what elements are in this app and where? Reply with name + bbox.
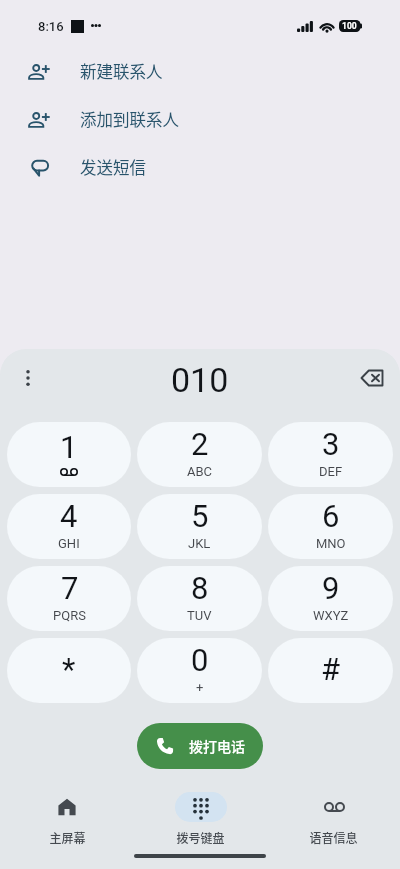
staticText: *: [62, 651, 76, 687]
staticText: 拨号键盘: [176, 829, 225, 846]
button[interactable]: 新建联系人: [0, 48, 400, 96]
staticText: 语音信息: [309, 829, 358, 846]
staticText: PQRS: [53, 608, 86, 623]
button[interactable]: 1: [7, 422, 131, 487]
staticText: MNO: [316, 536, 346, 551]
staticText: 1: [60, 429, 78, 465]
staticText: ABC: [187, 464, 213, 479]
button[interactable]: 9: [268, 566, 393, 631]
button[interactable]: 2: [137, 422, 262, 487]
staticText: 100: [342, 21, 357, 31]
staticText: JKL: [188, 536, 211, 551]
button[interactable]: 主屏幕: [0, 792, 134, 846]
staticText: #: [321, 651, 341, 687]
staticText: 8: [191, 570, 209, 606]
button[interactable]: 6: [268, 494, 393, 559]
button[interactable]: 0: [137, 638, 262, 703]
button[interactable]: 拨号键盘: [134, 792, 267, 846]
staticText: DEF: [319, 464, 343, 479]
staticText: GHI: [58, 536, 80, 551]
staticText: 7: [61, 570, 79, 606]
staticText: 拨打电话: [189, 736, 245, 756]
staticText: 新建联系人: [80, 59, 163, 83]
staticText: 添加到联系人: [80, 107, 179, 131]
button[interactable]: 发送短信: [0, 144, 400, 192]
staticText: 9: [322, 570, 340, 606]
staticText: 010: [171, 360, 229, 400]
staticText: 主屏幕: [49, 829, 86, 846]
button[interactable]: Backspace: [354, 360, 390, 396]
button[interactable]: 5: [137, 494, 262, 559]
staticText: 3: [322, 426, 340, 462]
staticText: 发送短信: [80, 155, 146, 179]
button[interactable]: 添加到联系人: [0, 96, 400, 144]
button[interactable]: More options: [12, 362, 44, 394]
button[interactable]: *: [7, 638, 131, 703]
button[interactable]: 3: [268, 422, 393, 487]
staticText: 6: [322, 498, 340, 534]
staticText: WXYZ: [313, 608, 349, 623]
button[interactable]: 拨打电话: [137, 723, 263, 769]
button[interactable]: 4: [7, 494, 131, 559]
staticText: TUV: [187, 608, 212, 623]
button[interactable]: 语音信息: [267, 792, 400, 846]
staticText: 2: [191, 426, 209, 462]
staticText: 4: [60, 498, 78, 534]
button[interactable]: 8: [137, 566, 262, 631]
staticText: 0: [191, 642, 209, 678]
button[interactable]: #: [268, 638, 393, 703]
staticText: 8:16: [38, 19, 64, 34]
staticText: +: [196, 680, 204, 695]
button[interactable]: 7: [7, 566, 131, 631]
staticText: 5: [191, 498, 209, 534]
